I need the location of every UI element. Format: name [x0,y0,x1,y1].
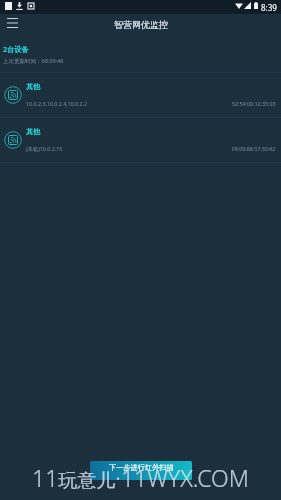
staticText: (本机)10.0.2.15 [26,145,63,152]
staticText: 52:54:00:12:35:03 [232,100,276,107]
staticText: 10.0.2.3,10.0.2.4,10.0.2.2 [26,100,88,107]
staticText: 其他 [26,82,40,91]
staticText: 8:39 [261,2,277,13]
staticText: 2台设备 [3,44,29,54]
staticText: 下一步进行红外扫描 [109,463,174,472]
button[interactable]: 其他 [0,117,281,162]
button[interactable]: 下一步进行红外扫描 [90,461,192,480]
staticText: 上次更新时间：08:39:46 [3,57,64,65]
staticText: 11玩意儿·11WYX.COM [32,462,249,493]
button[interactable]: 其他 [0,72,281,117]
button[interactable]: Open navigation menu [0,14,24,42]
staticText: 智营网优监控 [114,19,168,30]
staticText: 其他 [26,127,40,136]
staticText: F8:09:88:57:30:42 [232,145,276,152]
